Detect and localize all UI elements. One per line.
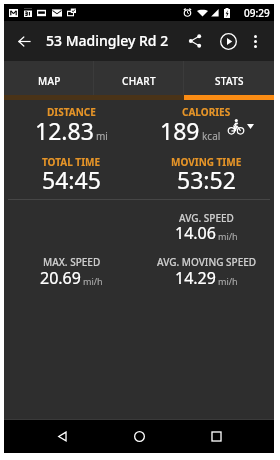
button[interactable]: Share — [181, 21, 209, 61]
button[interactable]: CHART — [94, 61, 184, 95]
staticText: STATS — [215, 74, 244, 88]
button[interactable]: STATS — [184, 61, 274, 95]
button[interactable]: Home — [101, 420, 178, 453]
staticText: MOVING TIME — [171, 155, 242, 169]
button[interactable]: Back — [4, 21, 44, 61]
staticText: 54:45 — [42, 164, 101, 195]
staticText: 09:29 — [244, 6, 270, 20]
staticText: MAX. SPEED — [43, 255, 101, 269]
button[interactable]: Play — [214, 21, 242, 61]
staticText: 189 — [160, 115, 200, 146]
staticText: mi — [96, 129, 108, 143]
staticText: AVG. MOVING SPEED — [157, 255, 257, 269]
staticText: TOTAL TIME — [42, 155, 101, 169]
button[interactable]: Recents — [178, 420, 255, 453]
staticText: 53 Madingley Rd 2 — [46, 31, 169, 50]
staticText: mi/h — [83, 275, 103, 287]
staticText: mi/h — [218, 275, 238, 287]
staticText: kcal — [202, 129, 221, 143]
staticText: 14.29 — [175, 267, 216, 289]
button[interactable]: MAP — [4, 61, 94, 95]
staticText: MAP — [38, 74, 61, 88]
staticText: 53:52 — [177, 164, 236, 195]
staticText: mi/h — [218, 230, 238, 242]
staticText: 20.69 — [40, 267, 81, 289]
staticText: AVG. SPEED — [179, 211, 234, 225]
button[interactable]: More options — [246, 21, 265, 61]
staticText: CHART — [122, 74, 156, 88]
button[interactable]: Back — [23, 420, 101, 453]
staticText: DISTANCE — [47, 105, 96, 119]
staticText: CALORIES — [182, 105, 231, 119]
button[interactable]: Activity type — [228, 119, 254, 134]
staticText: 12.83 — [35, 115, 94, 146]
staticText: 14.06 — [175, 222, 216, 244]
